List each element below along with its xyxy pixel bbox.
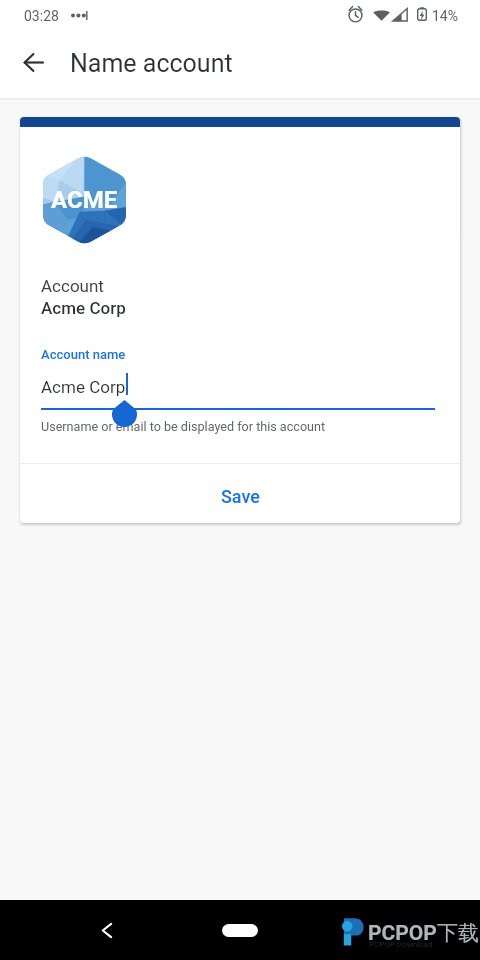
staticText: Acme Corp <box>41 298 126 318</box>
staticText: Name account <box>70 49 233 78</box>
staticText: Account <box>41 276 104 296</box>
staticText: Account name <box>41 347 126 362</box>
button[interactable]: Home <box>204 900 276 960</box>
staticText: ACME <box>51 186 118 214</box>
button[interactable]: Back <box>82 900 130 960</box>
staticText: Username or email to be displayed for th… <box>41 419 326 434</box>
staticText: PCPOP Download <box>369 940 433 949</box>
button[interactable]: Account name <box>41 347 435 410</box>
button[interactable]: Account <box>41 276 435 318</box>
staticText: PCPOP下载 <box>368 920 479 946</box>
staticText: Save <box>221 486 260 507</box>
staticText: 14% <box>432 8 458 24</box>
button[interactable]: Save <box>20 464 460 523</box>
staticText: Acme Corp <box>41 377 126 397</box>
button[interactable]: Back <box>10 38 58 86</box>
staticText: 03:28 <box>24 8 59 24</box>
